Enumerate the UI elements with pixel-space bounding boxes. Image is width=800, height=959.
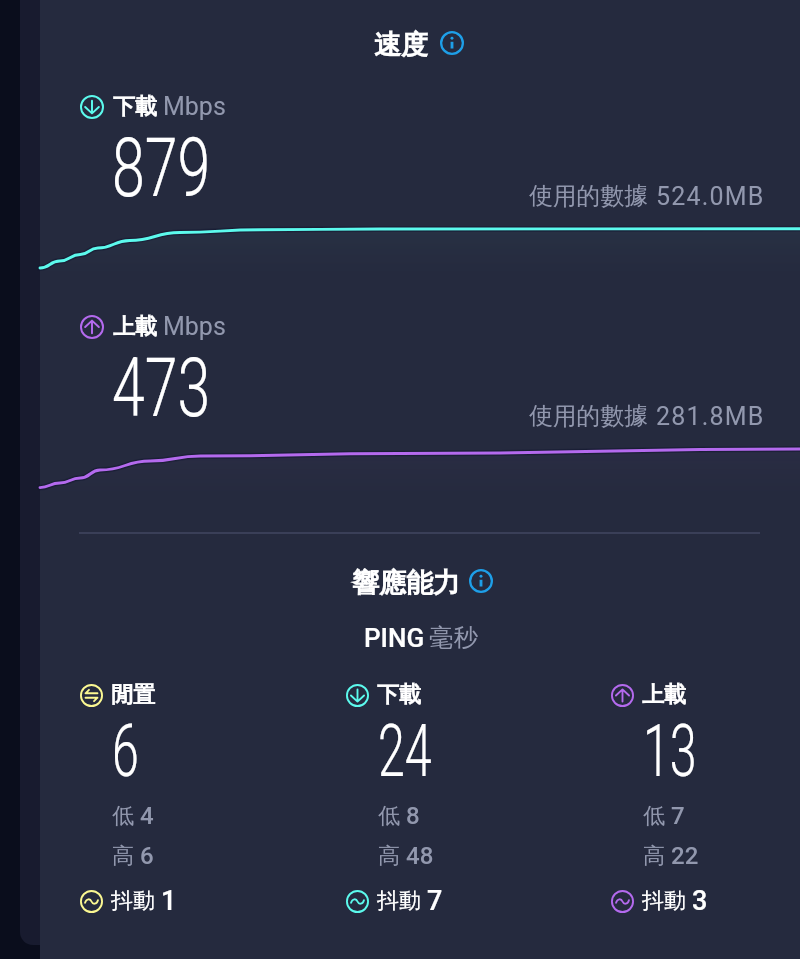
staticText: 6 bbox=[140, 842, 154, 870]
staticText: 3 bbox=[692, 885, 708, 917]
button[interactable]: PING bbox=[364, 622, 478, 653]
button[interactable]: 使用的數據 bbox=[529, 401, 765, 431]
staticText: 4 bbox=[140, 802, 154, 830]
button[interactable]: 下載 bbox=[80, 92, 226, 121]
staticText: 48 bbox=[406, 842, 434, 870]
staticText: 毫秒 bbox=[429, 622, 478, 653]
button[interactable]: Info bbox=[440, 31, 464, 55]
button[interactable]: 下載 bbox=[346, 681, 421, 709]
staticText: 13 bbox=[643, 708, 697, 794]
staticText: 281.8MB bbox=[656, 402, 765, 431]
staticText: 下載 bbox=[113, 93, 157, 121]
button[interactable]: 低 bbox=[643, 802, 685, 830]
staticText: 高 bbox=[112, 842, 134, 870]
staticText: 上載 bbox=[642, 681, 686, 709]
button[interactable]: 上載 bbox=[80, 312, 226, 341]
staticText: 高 bbox=[378, 842, 400, 870]
staticText: 低 bbox=[112, 802, 134, 830]
staticText: 879 bbox=[112, 120, 211, 216]
staticText: 24 bbox=[378, 708, 432, 794]
button[interactable]: 抖動 bbox=[346, 885, 443, 917]
button[interactable]: 低 bbox=[378, 802, 420, 830]
staticText: 6 bbox=[112, 708, 139, 794]
button[interactable]: 高 bbox=[643, 842, 699, 870]
staticText: 高 bbox=[643, 842, 665, 870]
button[interactable]: 抖動 bbox=[80, 885, 177, 917]
button[interactable]: 高 bbox=[112, 842, 154, 870]
button[interactable]: 上載 bbox=[611, 681, 686, 709]
button[interactable]: 閒置 bbox=[80, 681, 155, 709]
button[interactable]: 高 bbox=[378, 842, 434, 870]
staticText: 22 bbox=[671, 842, 699, 870]
staticText: 閒置 bbox=[111, 681, 155, 709]
button[interactable]: 使用的數據 bbox=[529, 181, 765, 211]
staticText: 8 bbox=[406, 802, 420, 830]
button[interactable]: 抖動 bbox=[611, 885, 708, 917]
button[interactable]: 低 bbox=[112, 802, 154, 830]
button[interactable]: Info bbox=[469, 569, 493, 593]
staticText: 抖動 bbox=[642, 887, 686, 915]
button[interactable]: 速度 bbox=[374, 28, 428, 62]
staticText: 使用的數據 bbox=[529, 181, 648, 211]
staticText: Mbps bbox=[163, 92, 226, 121]
staticText: 1 bbox=[161, 885, 177, 917]
staticText: 524.0MB bbox=[656, 182, 765, 211]
staticText: Mbps bbox=[163, 312, 226, 341]
staticText: 下載 bbox=[377, 681, 421, 709]
staticText: 低 bbox=[378, 802, 400, 830]
staticText: PING bbox=[364, 623, 425, 653]
staticText: 473 bbox=[112, 340, 211, 436]
staticText: 使用的數據 bbox=[529, 401, 648, 431]
staticText: 抖動 bbox=[111, 887, 155, 915]
staticText: 低 bbox=[643, 802, 665, 830]
staticText: 7 bbox=[427, 885, 443, 917]
button[interactable]: 響應能力 bbox=[352, 566, 460, 600]
staticText: 上載 bbox=[113, 313, 157, 341]
staticText: 7 bbox=[671, 802, 685, 830]
staticText: 抖動 bbox=[377, 887, 421, 915]
